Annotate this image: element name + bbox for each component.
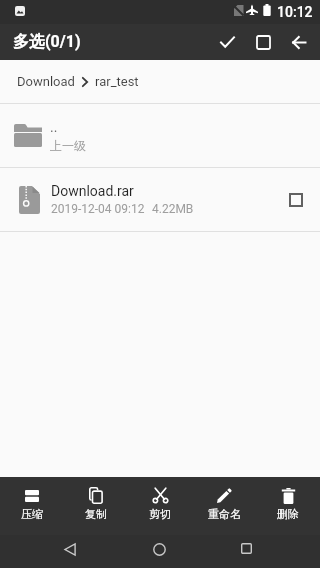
staticText: Download [17, 74, 75, 89]
staticText: .. [50, 119, 58, 135]
staticText: Download.rar [51, 183, 134, 199]
staticText: 10:12 [277, 4, 313, 20]
staticText: 删除 [277, 507, 299, 521]
staticText: 压缩 [21, 507, 43, 521]
staticText: rar_test [95, 74, 139, 89]
staticText: 重命名 [208, 507, 241, 521]
staticText: 多选(0/1) [13, 32, 81, 52]
staticText: 2019-12-04 09:12 [51, 202, 145, 216]
staticText: 上一级 [50, 138, 86, 153]
staticText: 剪切 [149, 507, 171, 521]
staticText: 复制 [85, 507, 107, 521]
staticText: 4.22MB [152, 202, 194, 216]
